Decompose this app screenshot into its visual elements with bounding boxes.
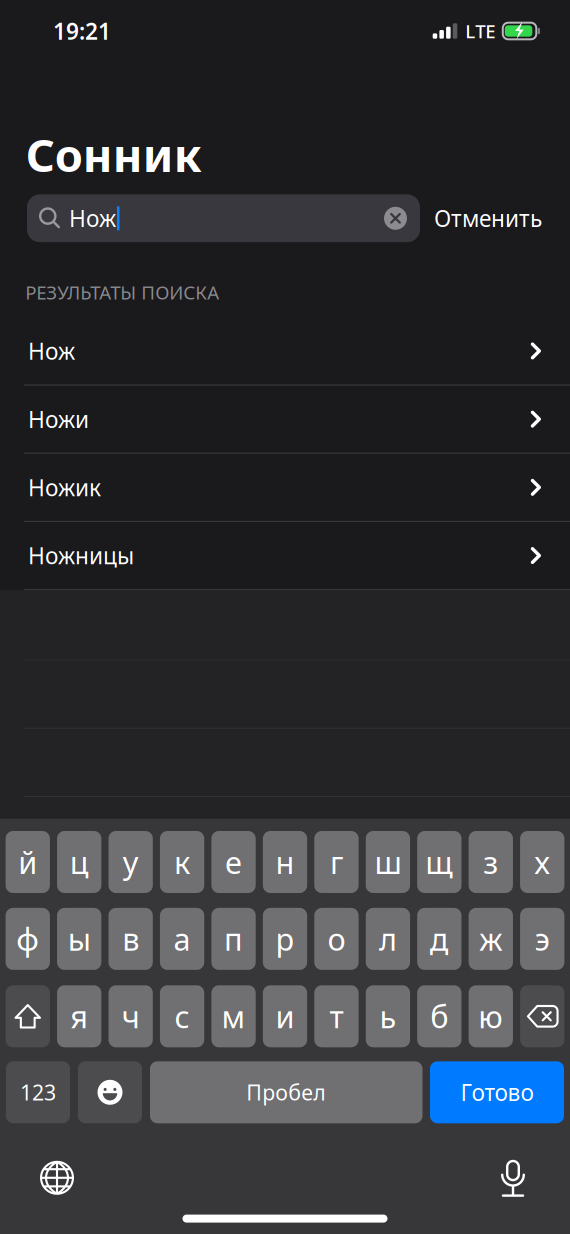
button[interactable]: е bbox=[211, 831, 256, 893]
button[interactable]: н bbox=[263, 831, 307, 893]
staticText: я bbox=[70, 996, 88, 1037]
staticText: б bbox=[430, 996, 448, 1037]
button[interactable]: к bbox=[160, 831, 204, 893]
staticText: з bbox=[483, 842, 498, 882]
button[interactable]: Готово bbox=[430, 1061, 564, 1123]
staticText: э bbox=[535, 918, 550, 959]
staticText: л bbox=[379, 918, 397, 959]
staticText: е bbox=[225, 842, 242, 882]
staticText: т bbox=[329, 996, 343, 1037]
staticText: ф bbox=[16, 918, 39, 959]
button[interactable]: Пробел bbox=[150, 1061, 422, 1123]
button[interactable]: Shift bbox=[6, 985, 50, 1047]
staticText: п bbox=[224, 918, 243, 959]
button[interactable]: о bbox=[314, 908, 359, 970]
staticText: ы bbox=[68, 918, 91, 959]
button[interactable]: ю bbox=[469, 985, 513, 1047]
button[interactable]: ц bbox=[57, 831, 101, 893]
button[interactable]: ш bbox=[366, 831, 410, 893]
staticText: г bbox=[330, 842, 343, 882]
button[interactable]: в bbox=[108, 908, 153, 970]
button[interactable]: Dictate bbox=[484, 1151, 542, 1205]
button[interactable]: г bbox=[314, 831, 359, 893]
staticText: Нож bbox=[69, 203, 116, 233]
button[interactable]: з bbox=[469, 831, 513, 893]
button[interactable]: ф bbox=[6, 908, 50, 970]
staticText: Отменить bbox=[434, 203, 542, 233]
button[interactable]: 123 bbox=[6, 1061, 70, 1123]
staticText: а bbox=[174, 918, 191, 959]
button[interactable]: ы bbox=[57, 908, 101, 970]
staticText: о bbox=[327, 918, 345, 959]
button[interactable]: м bbox=[211, 985, 256, 1047]
staticText: р bbox=[275, 918, 294, 959]
staticText: Нож bbox=[28, 336, 75, 366]
button[interactable]: ч bbox=[108, 985, 153, 1047]
staticText: м bbox=[221, 996, 245, 1037]
button[interactable]: Delete bbox=[520, 985, 564, 1047]
staticText: Ножницы bbox=[28, 540, 134, 571]
staticText: ч bbox=[122, 996, 140, 1037]
staticText: LTE bbox=[465, 19, 495, 43]
staticText: Сонник bbox=[26, 124, 202, 185]
button[interactable]: й bbox=[6, 831, 50, 893]
staticText: РЕЗУЛЬТАТЫ ПОИСКА bbox=[25, 280, 219, 305]
button[interactable]: щ bbox=[417, 831, 461, 893]
staticText: с bbox=[175, 996, 190, 1037]
staticText: н bbox=[275, 842, 294, 882]
button[interactable]: э bbox=[520, 908, 564, 970]
staticText: й bbox=[18, 842, 37, 882]
button[interactable]: у bbox=[108, 831, 153, 893]
staticText: ж bbox=[479, 918, 502, 959]
staticText: д bbox=[430, 918, 449, 959]
button[interactable]: Нож bbox=[0, 317, 570, 386]
staticText: х bbox=[534, 842, 550, 882]
button[interactable]: и bbox=[263, 985, 307, 1047]
button[interactable]: п bbox=[211, 908, 256, 970]
staticText: ш bbox=[374, 842, 401, 882]
staticText: 123 bbox=[20, 1078, 56, 1106]
staticText: ц bbox=[70, 842, 89, 882]
staticText: Ножик bbox=[28, 472, 101, 502]
staticText: и bbox=[275, 996, 294, 1037]
staticText: к bbox=[174, 842, 190, 882]
button[interactable]: Ножницы bbox=[0, 522, 570, 590]
button[interactable]: л bbox=[366, 908, 410, 970]
button[interactable]: р bbox=[263, 908, 307, 970]
staticText: 19:21 bbox=[53, 16, 111, 46]
button[interactable]: д bbox=[417, 908, 461, 970]
button[interactable]: ь bbox=[366, 985, 410, 1047]
button[interactable]: т bbox=[314, 985, 359, 1047]
button[interactable]: Emoji bbox=[78, 1061, 142, 1123]
button[interactable]: б bbox=[417, 985, 461, 1047]
button[interactable]: Next keyboard bbox=[28, 1151, 86, 1205]
staticText: в bbox=[122, 918, 139, 959]
staticText: Ножи bbox=[28, 404, 89, 434]
button[interactable]: с bbox=[160, 985, 204, 1047]
staticText: Готово bbox=[460, 1077, 533, 1107]
staticText: Пробел bbox=[246, 1078, 326, 1106]
button[interactable]: Отменить bbox=[420, 194, 556, 242]
staticText: у bbox=[123, 842, 139, 882]
staticText: ю bbox=[478, 996, 503, 1037]
button[interactable]: х bbox=[520, 831, 564, 893]
button[interactable]: Ножи bbox=[0, 386, 570, 454]
staticText: щ bbox=[425, 842, 453, 882]
button[interactable]: ж bbox=[469, 908, 513, 970]
staticText: ь bbox=[379, 996, 396, 1037]
button[interactable]: а bbox=[160, 908, 204, 970]
button[interactable]: Ножик bbox=[0, 454, 570, 522]
button[interactable]: я bbox=[57, 985, 101, 1047]
